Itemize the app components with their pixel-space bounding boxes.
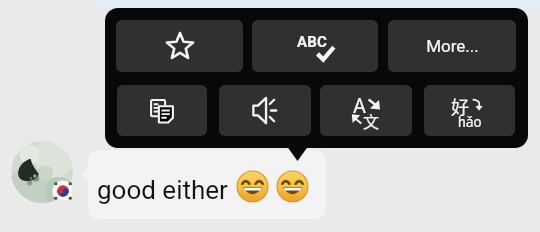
- staticText: More...: [426, 36, 479, 56]
- staticText: good either: [97, 175, 228, 205]
- button[interactable]: Translate: [320, 85, 412, 136]
- staticText: ABC: [297, 33, 328, 51]
- button[interactable]: More...: [388, 20, 516, 72]
- staticText: hǎo: [458, 112, 482, 131]
- button[interactable]: Copy: [117, 85, 207, 136]
- staticText: 文: [363, 109, 380, 132]
- button[interactable]: Favourite: [116, 20, 243, 72]
- button[interactable]: Check spelling: [252, 20, 378, 72]
- staticText: A: [353, 94, 367, 117]
- button[interactable]: Read aloud: [219, 85, 311, 136]
- button[interactable]: Pinyin: [424, 85, 515, 136]
- staticText: 好: [451, 93, 469, 119]
